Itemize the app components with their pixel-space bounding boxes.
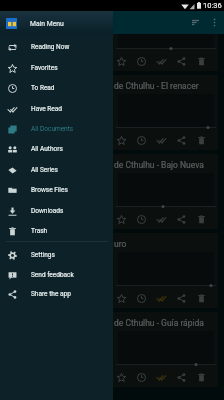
staticText: All Authors (31, 145, 63, 153)
staticText: All Documents (31, 125, 74, 133)
button[interactable]: Read later (131, 288, 151, 308)
button[interactable]: Share (64, 288, 84, 308)
button[interactable]: Share (171, 367, 191, 387)
staticText: All Series (31, 166, 58, 174)
staticText: de Cthulhu - Bajo Nueva (114, 160, 214, 170)
button[interactable]: de Cthulhu - Despertar (111, 0, 218, 71)
staticText: Reading Now (31, 43, 70, 51)
button[interactable]: Mark as read (151, 367, 171, 387)
button[interactable]: More options (206, 14, 223, 31)
button[interactable]: Delete (191, 51, 211, 71)
staticText: uro (7, 239, 107, 249)
button[interactable]: Mark as read (151, 209, 171, 229)
button[interactable]: Browse Files (0, 180, 113, 200)
button[interactable]: Delete (191, 130, 211, 150)
button[interactable]: Mark as read (44, 209, 64, 229)
staticText: To Read (31, 84, 55, 92)
button[interactable]: Favorite (4, 51, 24, 71)
staticText: Main Menu (30, 20, 64, 28)
button[interactable]: Read later (131, 367, 151, 387)
button[interactable]: de Cthulhu - Bajo Nueva (111, 154, 218, 229)
staticText: Browse Files (31, 186, 68, 194)
button[interactable]: Share (171, 130, 191, 150)
button[interactable]: Favorite (4, 288, 24, 308)
staticText: Settings (31, 251, 55, 259)
button[interactable]: Share the app (0, 284, 113, 304)
button[interactable]: Share (171, 209, 191, 229)
button[interactable]: Mark as read (44, 130, 64, 150)
button[interactable]: Read later (24, 130, 44, 150)
button[interactable]: Favorite (4, 209, 24, 229)
button[interactable]: Settings (0, 245, 113, 265)
button[interactable]: Share (64, 130, 84, 150)
button[interactable]: Main Menu (0, 13, 113, 34)
button[interactable]: de Cthulhu - Despertar (4, 0, 111, 71)
button[interactable]: Share (171, 288, 191, 308)
button[interactable]: de Cthulhu - El renacer (111, 75, 218, 150)
staticText: Share the app (31, 290, 71, 298)
button[interactable]: All Documents (0, 119, 113, 139)
staticText: Trash (31, 227, 48, 235)
staticText: de Cthulhu - El renacer (114, 81, 214, 91)
button[interactable]: Read later (131, 130, 151, 150)
button[interactable]: Mark as read (44, 288, 64, 308)
button[interactable]: Reading Now (0, 37, 113, 57)
button[interactable]: Favorite (111, 367, 131, 387)
staticText: Downloads (31, 207, 64, 215)
button[interactable]: Favorite (111, 51, 131, 71)
button[interactable]: Delete (191, 209, 211, 229)
staticText: Favorites (31, 64, 58, 72)
button[interactable]: Read later (131, 209, 151, 229)
button[interactable]: Read later (24, 288, 44, 308)
button[interactable]: Read later (24, 209, 44, 229)
button[interactable]: Mark as read (44, 51, 64, 71)
button[interactable]: uro (111, 233, 218, 308)
button[interactable]: Mark as read (151, 130, 171, 150)
staticText: uro (114, 239, 214, 249)
button[interactable]: To Read (0, 78, 113, 98)
button[interactable]: Delete (191, 288, 211, 308)
staticText: Have Read (31, 105, 62, 113)
staticText: de Cthulhu - Guía rápida (114, 318, 214, 328)
button[interactable]: Read later (24, 51, 44, 71)
staticText: 10:36 (203, 1, 222, 10)
button[interactable]: Mark as read (151, 51, 171, 71)
button[interactable]: Share (171, 51, 191, 71)
button[interactable]: Sort (185, 12, 206, 33)
staticText: de Cthulhu - Bajo Nueva (7, 160, 107, 170)
staticText: de Cthulhu - Despertar (7, 2, 107, 12)
button[interactable]: Favorite (111, 130, 131, 150)
button[interactable]: Favorite (111, 209, 131, 229)
button[interactable]: Favorite (111, 288, 131, 308)
button[interactable]: Read later (131, 51, 151, 71)
button[interactable]: Send feedback (0, 265, 113, 285)
button[interactable]: uro (4, 233, 111, 308)
button[interactable]: de Cthulhu - Bajo Nueva (4, 154, 111, 229)
staticText: Send feedback (31, 271, 74, 279)
button[interactable]: Favorite (4, 130, 24, 150)
button[interactable]: Have Read (0, 99, 113, 119)
button[interactable]: de Cthulhu - Guía rápida (111, 312, 218, 387)
button[interactable]: Trash (0, 221, 113, 241)
button[interactable]: de Cthulhu - El renacer (4, 75, 111, 150)
button[interactable]: Delete (191, 367, 211, 387)
button[interactable]: All Series (0, 160, 113, 180)
button[interactable]: All Authors (0, 139, 113, 159)
staticText: de Cthulhu - El renacer (7, 81, 107, 91)
button[interactable]: Favorites (0, 58, 113, 78)
button[interactable]: Mark as read (151, 288, 171, 308)
button[interactable]: Downloads (0, 201, 113, 221)
